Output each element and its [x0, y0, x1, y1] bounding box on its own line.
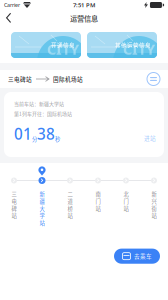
staticText: 门 — [123, 197, 128, 205]
staticText: 站 — [95, 204, 100, 212]
staticText: 7:51 PM — [73, 1, 95, 9]
staticText: 桥 — [67, 204, 72, 212]
staticText: 碑 — [11, 204, 16, 212]
button[interactable]: CITY — [11, 32, 81, 58]
staticText: 进站 — [144, 134, 156, 142]
staticText: 当前车站：新疆大学站 — [14, 100, 64, 107]
staticText: 三 — [11, 190, 16, 198]
staticText: 大 — [39, 204, 44, 212]
staticText: 站 — [39, 219, 44, 227]
staticText: 街 — [151, 204, 156, 212]
staticText: CITY — [123, 39, 155, 59]
staticText: 站 — [67, 212, 72, 219]
button[interactable]: Back — [0, 10, 17, 26]
staticText: 01 — [14, 123, 32, 144]
staticText: 学 — [39, 212, 44, 219]
staticText: 疆 — [39, 197, 44, 205]
staticText: CITY — [47, 39, 79, 59]
staticText: 第1列车开往：国际机场站 — [14, 110, 72, 117]
staticText: 电 — [11, 197, 16, 205]
staticText: 国际机场站 — [53, 75, 83, 83]
staticText: 去乘车 — [134, 252, 152, 260]
button[interactable]: 去乘车 — [114, 249, 160, 264]
staticText: 其他运营信息 — [115, 41, 151, 49]
staticText: 秒 — [55, 135, 60, 143]
staticText: 三电碑站 — [8, 75, 32, 83]
staticText: 分 — [32, 135, 37, 143]
staticText: 二 — [67, 190, 72, 198]
staticText: 道 — [67, 197, 72, 205]
staticText: 北 — [123, 190, 128, 198]
staticText: 南 — [95, 190, 100, 198]
staticText: 站 — [123, 204, 128, 212]
staticText: 兴 — [151, 197, 156, 205]
button[interactable]: Swap direction — [147, 72, 160, 85]
staticText: 运营信息 — [70, 13, 98, 23]
staticText: 站 — [11, 212, 16, 219]
staticText: 开通信息 — [51, 41, 75, 49]
staticText: 门 — [95, 197, 100, 205]
staticText: 38 — [37, 123, 55, 144]
button[interactable]: CITY — [87, 32, 157, 58]
staticText: 站 — [151, 212, 156, 219]
staticText: Carrier — [4, 1, 20, 9]
staticText: 新 — [151, 190, 156, 198]
staticText: 新 — [39, 190, 44, 198]
